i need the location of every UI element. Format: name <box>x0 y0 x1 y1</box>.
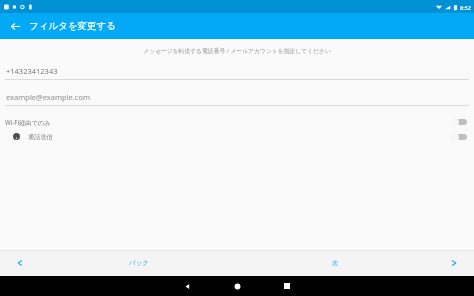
staticText: 通話送信 <box>28 133 450 141</box>
button[interactable]: example@example.com <box>0 92 474 106</box>
button[interactable]: バック <box>40 250 237 276</box>
button[interactable]: Recent apps <box>275 276 299 296</box>
staticText: メッセージを転送する電話番号 / メールアカウントを指定してください <box>0 47 474 55</box>
staticText: Wi-Fi経由でのみ <box>5 118 450 126</box>
staticText: フィルタを変更する <box>29 20 117 32</box>
staticText: 8:52 <box>460 4 471 11</box>
button[interactable]: Next <box>434 250 474 276</box>
button[interactable]: Wi-Fi経由でのみ <box>0 114 474 129</box>
staticText: example@example.com <box>6 92 90 102</box>
staticText: バック <box>129 259 149 267</box>
button[interactable]: 通話送信 <box>0 129 474 144</box>
button[interactable]: 次 <box>237 250 434 276</box>
staticText: 次 <box>332 259 339 267</box>
button[interactable]: Previous <box>0 250 40 276</box>
button[interactable]: Back <box>175 276 199 296</box>
button[interactable]: Back <box>5 16 25 36</box>
button[interactable]: Toggle <box>450 117 467 127</box>
button[interactable]: Home <box>225 276 249 296</box>
staticText: +14323412343 <box>6 66 58 76</box>
button[interactable]: Toggle <box>450 132 467 142</box>
button[interactable]: +14323412343 <box>0 66 474 80</box>
